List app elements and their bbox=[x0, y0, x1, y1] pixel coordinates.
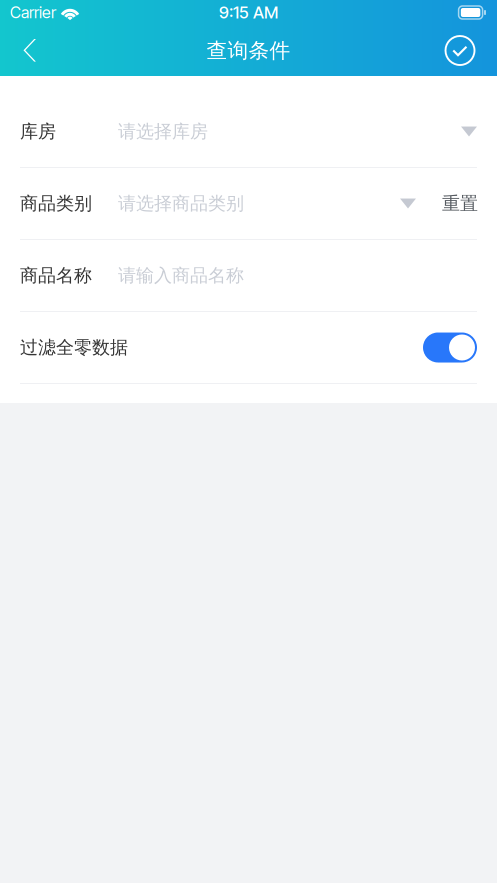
staticText: 库房 bbox=[20, 120, 56, 143]
staticText: 9:15 AM bbox=[219, 2, 278, 23]
staticText: 请选择商品类别 bbox=[118, 192, 244, 215]
button[interactable]: 商品名称 bbox=[0, 240, 497, 311]
staticText: 查询条件 bbox=[206, 37, 290, 63]
staticText: 重置 bbox=[442, 192, 478, 215]
staticText: 请输入商品名称 bbox=[118, 264, 244, 287]
staticText: Carrier bbox=[10, 3, 56, 22]
button[interactable]: 过滤全零数据 bbox=[0, 312, 497, 383]
staticText: 请选择库房 bbox=[118, 120, 208, 143]
button[interactable]: Confirm bbox=[437, 28, 483, 72]
staticText: 商品类别 bbox=[20, 192, 92, 215]
button[interactable]: 重置 bbox=[432, 168, 488, 239]
button[interactable]: 商品类别 bbox=[0, 168, 497, 239]
staticText: 商品名称 bbox=[20, 264, 92, 287]
staticText: 过滤全零数据 bbox=[20, 336, 128, 359]
button[interactable]: 库房 bbox=[0, 96, 497, 167]
button[interactable]: Back bbox=[7, 28, 53, 72]
